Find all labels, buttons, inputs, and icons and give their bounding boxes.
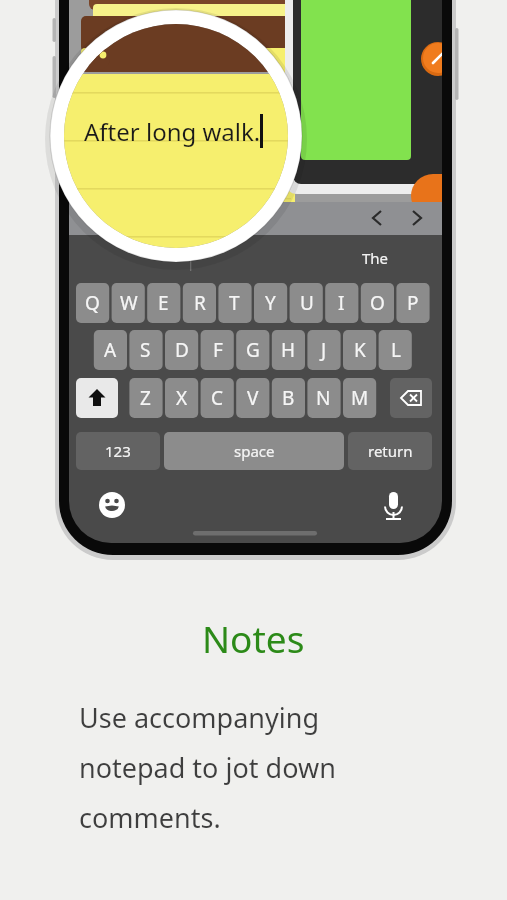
staticText: T xyxy=(229,290,240,316)
staticText: V xyxy=(247,385,259,411)
button[interactable]: P xyxy=(396,283,429,323)
staticText: P xyxy=(407,290,419,316)
staticText: K xyxy=(354,337,366,363)
button[interactable]: C xyxy=(201,378,234,418)
staticText: U xyxy=(300,290,314,316)
staticText: D xyxy=(175,337,189,363)
button[interactable]: Next field xyxy=(400,200,434,234)
button[interactable]: 123 xyxy=(76,432,160,470)
staticText: 123 xyxy=(105,441,131,461)
staticText: H xyxy=(281,337,296,363)
button[interactable]: E xyxy=(147,283,180,323)
button[interactable]: I xyxy=(325,283,358,323)
staticText: W xyxy=(120,290,138,316)
button[interactable]: B xyxy=(272,378,305,418)
staticText: X xyxy=(176,385,188,411)
button[interactable]: J xyxy=(307,330,340,370)
staticText: G xyxy=(246,337,260,363)
staticText: N xyxy=(316,385,331,411)
button[interactable]: U xyxy=(290,283,323,323)
button[interactable]: return xyxy=(348,432,432,470)
button[interactable]: V xyxy=(236,378,269,418)
staticText: L xyxy=(391,337,401,363)
button[interactable]: N xyxy=(307,378,340,418)
staticText: F xyxy=(213,337,223,363)
button[interactable]: G xyxy=(236,330,269,370)
staticText: Y xyxy=(265,290,276,316)
button[interactable]: F xyxy=(201,330,234,370)
staticText: space xyxy=(234,441,275,461)
staticText: The xyxy=(362,248,389,268)
staticText: J xyxy=(321,337,327,363)
staticText: After long walk. xyxy=(84,115,261,148)
button[interactable]: Q xyxy=(76,283,109,323)
staticText: Z xyxy=(140,385,151,411)
staticText: B xyxy=(282,385,295,411)
button[interactable]: O xyxy=(361,283,394,323)
staticText: A xyxy=(104,337,117,363)
button[interactable]: Backspace xyxy=(390,378,432,418)
staticText: Q xyxy=(85,290,100,316)
button[interactable]: Emoji xyxy=(97,490,127,520)
button[interactable]: The xyxy=(330,243,420,273)
button[interactable]: D xyxy=(165,330,198,370)
staticText: I xyxy=(338,290,345,316)
staticText: return xyxy=(368,441,413,461)
button[interactable]: T xyxy=(218,283,251,323)
staticText: M xyxy=(351,385,369,411)
button[interactable]: R xyxy=(183,283,216,323)
button[interactable]: Y xyxy=(254,283,287,323)
button[interactable]: L xyxy=(379,330,412,370)
button[interactable]: S xyxy=(129,330,162,370)
button[interactable]: H xyxy=(272,330,305,370)
button[interactable]: space xyxy=(164,432,344,470)
staticText: S xyxy=(140,337,151,363)
button[interactable]: Previous field xyxy=(360,200,394,234)
staticText: C xyxy=(211,385,224,411)
button[interactable]: X xyxy=(165,378,198,418)
button[interactable]: M xyxy=(343,378,376,418)
staticText: R xyxy=(194,290,206,316)
button[interactable]: A xyxy=(94,330,127,370)
staticText: O xyxy=(370,290,385,316)
button[interactable]: W xyxy=(112,283,145,323)
button[interactable]: Shift xyxy=(76,378,118,418)
button[interactable]: Dictation xyxy=(379,488,409,522)
staticText: Use accompanying notepad to jot down com… xyxy=(79,699,431,836)
button[interactable]: Z xyxy=(129,378,162,418)
button[interactable]: K xyxy=(343,330,376,370)
staticText: E xyxy=(158,290,169,316)
staticText: Notes xyxy=(202,613,305,663)
